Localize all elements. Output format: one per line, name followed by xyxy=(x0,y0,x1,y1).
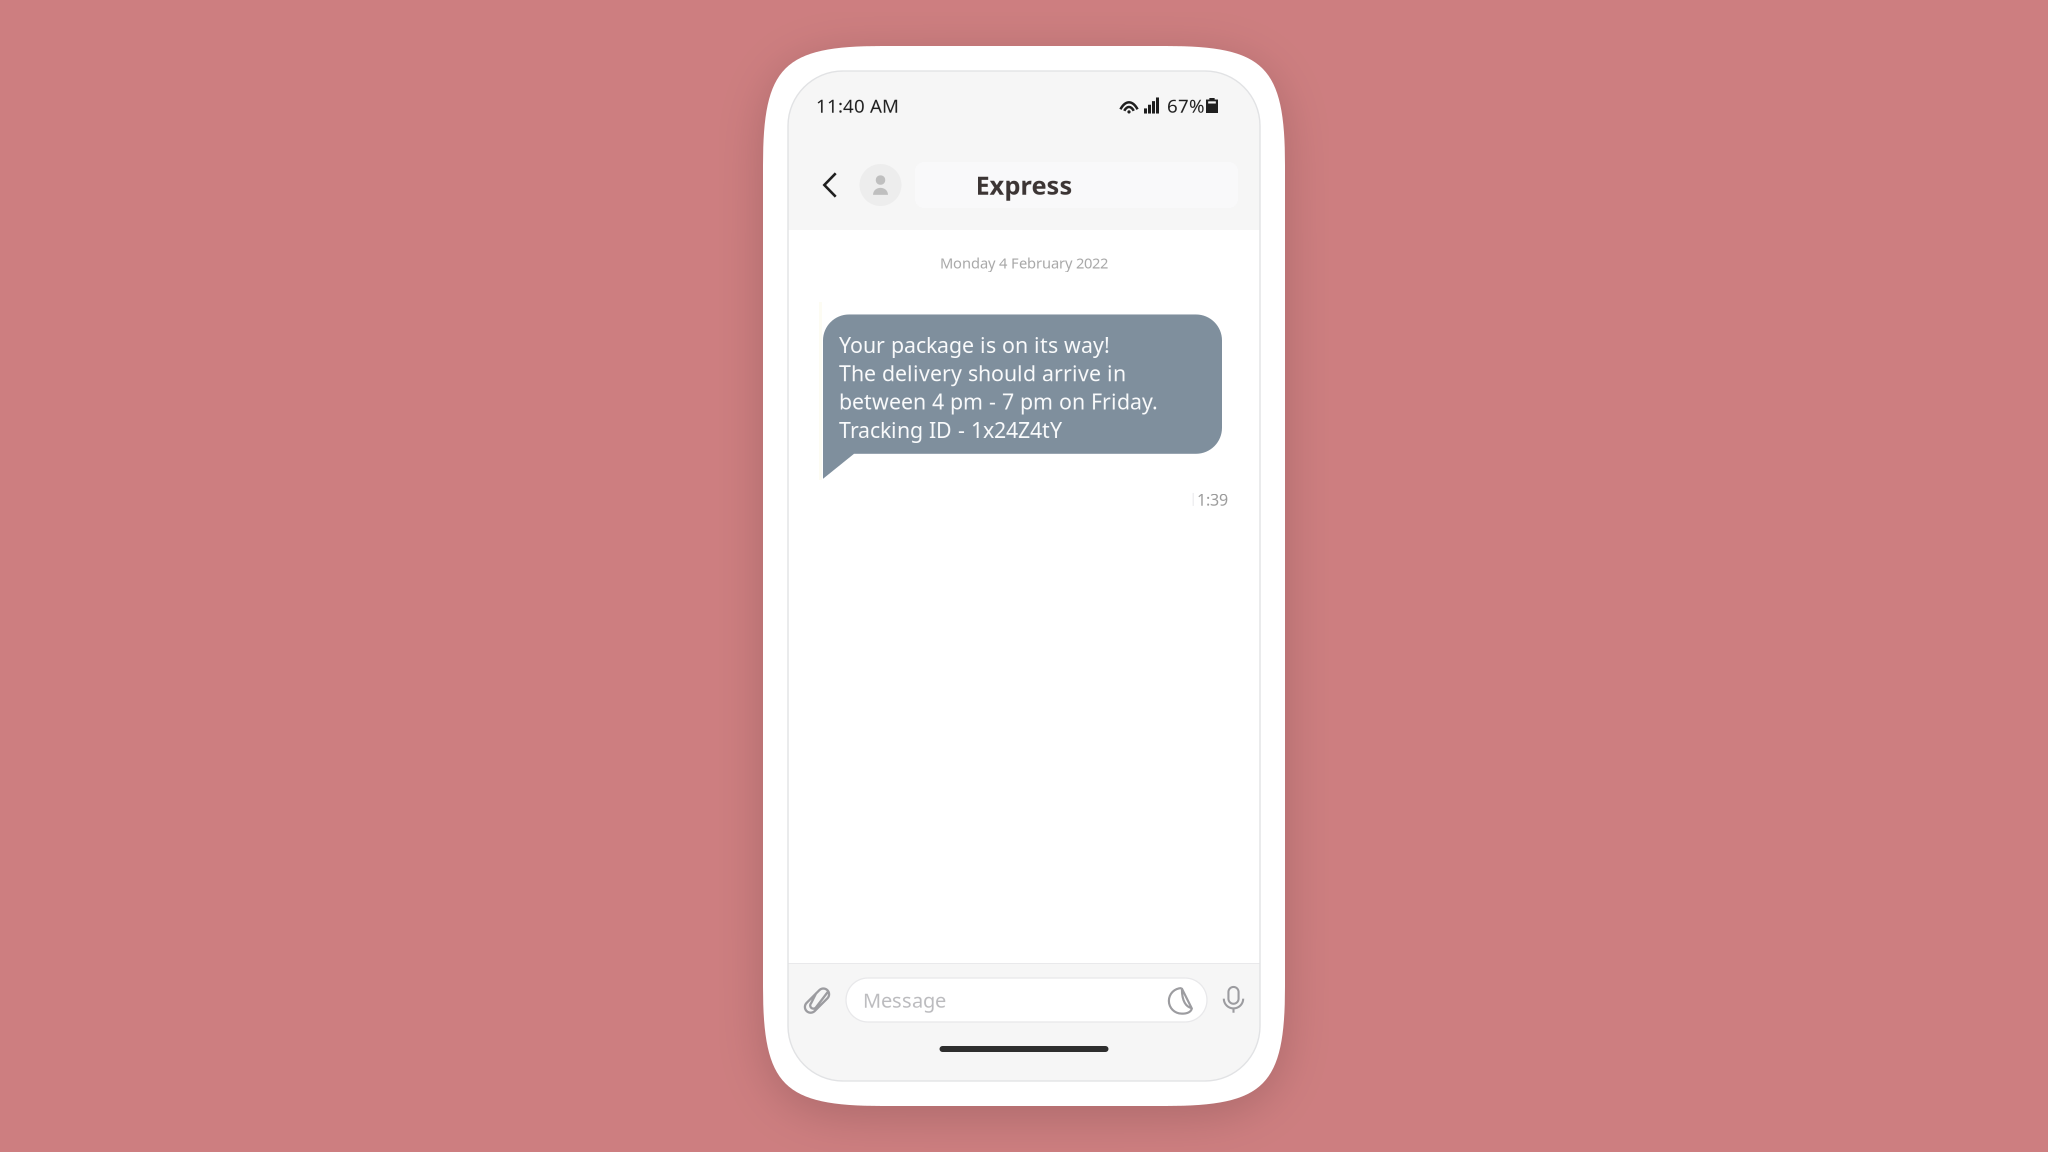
button[interactable]: Back xyxy=(809,151,851,219)
button[interactable]: Message xyxy=(846,978,1207,1022)
button[interactable]: Voice message xyxy=(1207,972,1260,1028)
button[interactable]: Attach file xyxy=(788,972,846,1028)
staticText: Tracking ID - 1x24Z4tY xyxy=(839,415,1062,444)
staticText: Your package is on its way! xyxy=(839,330,1110,359)
staticText: Express xyxy=(975,168,1072,202)
staticText: 1:39 xyxy=(1197,489,1228,510)
staticText: Monday 4 February 2022 xyxy=(940,253,1108,272)
staticText: The delivery should arrive in xyxy=(839,359,1126,387)
button[interactable]: Contact profile xyxy=(851,151,910,219)
staticText: 67% xyxy=(1167,93,1205,118)
staticText: Message xyxy=(863,987,946,1013)
staticText: 11:40 AM xyxy=(816,93,899,118)
staticText: between 4 pm - 7 pm on Friday. xyxy=(839,387,1158,415)
